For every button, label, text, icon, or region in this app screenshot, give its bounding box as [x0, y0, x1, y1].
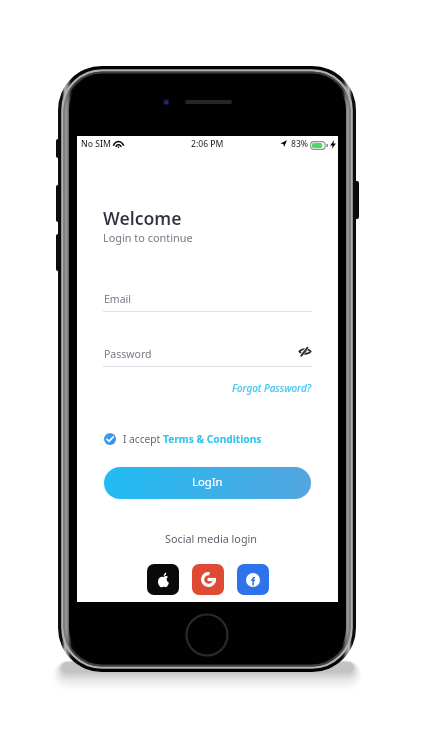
staticText: I accept — [123, 432, 163, 446]
staticText: Email — [104, 292, 131, 306]
staticText: 2:06 PM — [191, 138, 224, 150]
staticText: 83% — [291, 138, 309, 150]
button[interactable]: Forgot Password? — [103, 381, 312, 394]
button[interactable]: I accept — [104, 432, 262, 446]
staticText: Welcome — [103, 206, 182, 230]
button[interactable]: Sign in with Facebook — [237, 564, 269, 595]
button[interactable]: Sign in with Apple — [147, 564, 179, 595]
staticText: LogIn — [192, 474, 223, 489]
button[interactable]: LogIn — [104, 467, 311, 499]
staticText: Terms & Conditions — [163, 432, 262, 446]
staticText: Social media login — [105, 531, 317, 546]
staticText: Password — [104, 347, 152, 361]
button[interactable]: Show password — [299, 347, 311, 356]
button[interactable]: Home — [185, 613, 229, 657]
staticText: Login to continue — [103, 230, 193, 245]
button[interactable]: Sign in with Google — [192, 564, 224, 595]
staticText: No SIM — [81, 138, 111, 150]
staticText: Forgot Password? — [232, 381, 312, 394]
